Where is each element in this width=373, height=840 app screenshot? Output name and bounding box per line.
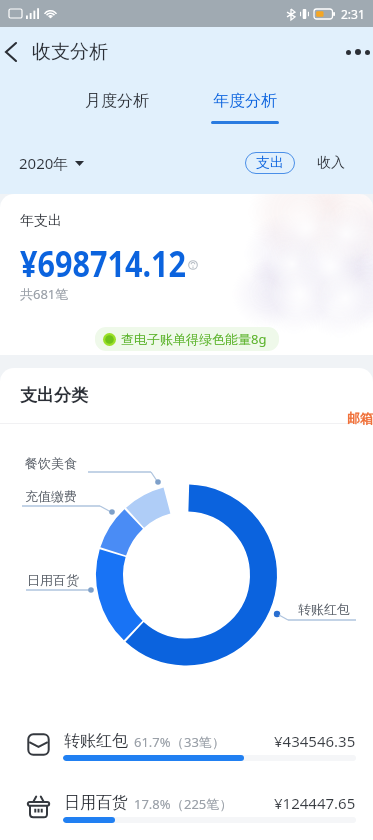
staticText: 日用百货 <box>27 572 79 588</box>
staticText: ¥124447.65 <box>274 793 356 813</box>
staticText: 转账红包 <box>64 731 128 751</box>
staticText: 日用百货 <box>64 793 128 813</box>
staticText: 查电子账单得绿色能量8g <box>121 330 267 348</box>
staticText: （225笔） <box>171 795 233 813</box>
staticText: 充值缴费 <box>25 488 77 504</box>
staticText: 共681笔 <box>20 285 69 303</box>
staticText: 收入 <box>317 154 345 172</box>
button[interactable]: 月度分析 <box>79 77 155 125</box>
staticText: 转账红包 <box>298 601 350 617</box>
button[interactable]: 查电子账单得绿色能量8g <box>95 327 279 351</box>
button[interactable]: More options <box>337 39 373 65</box>
staticText: （33笔） <box>171 733 225 751</box>
button[interactable]: 2020年 <box>15 147 88 179</box>
staticText: ¥434546.35 <box>274 731 356 751</box>
button[interactable]: 收入 <box>313 150 349 176</box>
staticText: 餐饮美食 <box>25 455 77 471</box>
button[interactable]: 支出 <box>245 152 295 174</box>
staticText: 年支出 <box>20 212 62 230</box>
staticText: ¥698714.12 <box>20 239 187 277</box>
button[interactable]: 日用百货 <box>0 775 373 837</box>
staticText: 61.7% <box>134 733 171 751</box>
staticText: 17.8% <box>134 795 171 813</box>
staticText: 年度分析 <box>213 91 277 111</box>
staticText: 支出 <box>256 154 284 172</box>
button[interactable]: 转账红包 <box>0 713 373 775</box>
staticText: 月度分析 <box>85 91 149 111</box>
button[interactable]: Back <box>0 34 27 70</box>
staticText: 支出分类 <box>20 385 88 406</box>
staticText: 2020年 <box>19 153 69 173</box>
staticText: 收支分析 <box>32 40 108 64</box>
staticText: 邮箱 <box>347 410 373 426</box>
staticText: 2:31 <box>341 6 365 22</box>
button[interactable]: 年度分析 <box>205 77 285 124</box>
